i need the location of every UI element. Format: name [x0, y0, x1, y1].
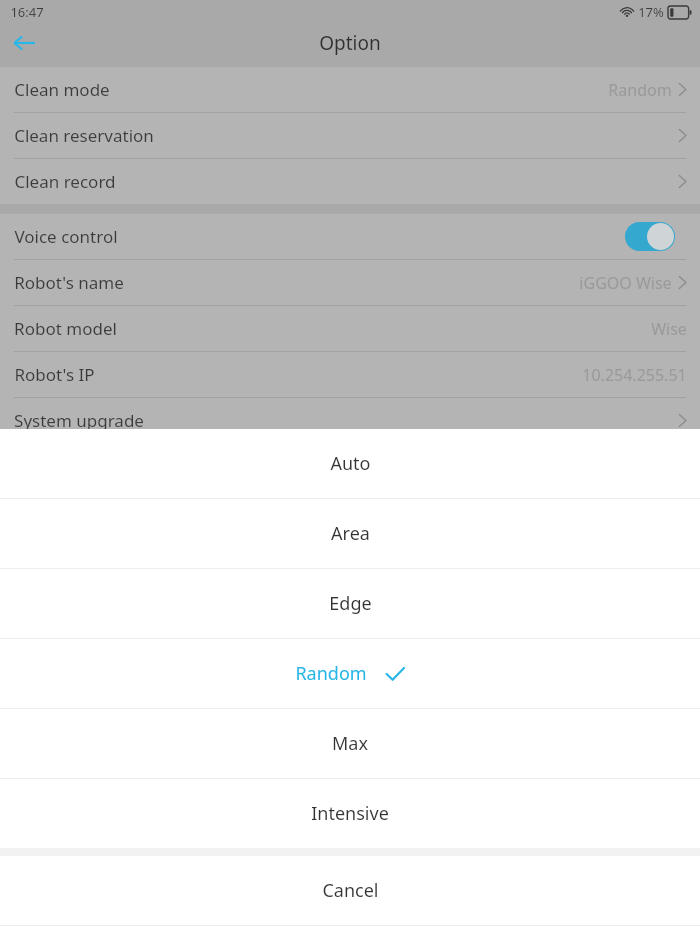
- button[interactable]: Robot's name: [0, 260, 700, 305]
- button[interactable]: Voice control: [0, 214, 700, 259]
- button[interactable]: Random: [0, 639, 700, 708]
- button[interactable]: Clean mode: [0, 67, 700, 112]
- staticText: Clean record: [14, 170, 116, 193]
- staticText: System upgrade: [14, 409, 144, 432]
- button[interactable]: Voice control toggle: [625, 222, 675, 251]
- staticText: Robot's name: [14, 271, 124, 294]
- button[interactable]: Back: [0, 24, 48, 62]
- staticText: Edge: [329, 591, 372, 616]
- staticText: Voice control: [14, 225, 118, 248]
- button[interactable]: Intensive: [0, 779, 700, 848]
- button[interactable]: Clean record: [0, 159, 700, 204]
- staticText: Robot model: [14, 317, 117, 340]
- staticText: Robot's IP: [14, 363, 95, 386]
- staticText: 16:47: [10, 3, 44, 21]
- staticText: Auto: [330, 451, 371, 476]
- button[interactable]: Clean reservation: [0, 113, 700, 158]
- button[interactable]: Edge: [0, 569, 700, 638]
- staticText: Wise: [651, 318, 687, 340]
- staticText: Max: [332, 731, 368, 756]
- button[interactable]: System upgrade: [0, 398, 700, 443]
- staticText: Cancel: [322, 878, 379, 903]
- button[interactable]: Area: [0, 499, 700, 568]
- button[interactable]: Cancel: [0, 856, 700, 925]
- staticText: Option: [319, 30, 381, 56]
- staticText: Random: [608, 79, 672, 101]
- staticText: Random: [295, 661, 367, 686]
- button[interactable]: Robot's IP: [0, 352, 700, 397]
- button[interactable]: Robot model: [0, 306, 700, 351]
- staticText: Clean mode: [14, 78, 110, 101]
- staticText: Clean reservation: [14, 124, 154, 147]
- staticText: Intensive: [311, 801, 389, 826]
- staticText: 17%: [638, 3, 664, 21]
- staticText: 10.254.255.51: [582, 364, 687, 386]
- staticText: iGGOO Wise: [579, 272, 672, 294]
- button[interactable]: Max: [0, 709, 700, 778]
- staticText: Area: [331, 521, 370, 546]
- button[interactable]: Auto: [0, 429, 700, 498]
